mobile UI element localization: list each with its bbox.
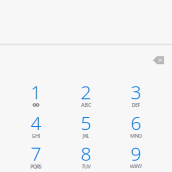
staticText: PQRS (30, 163, 42, 170)
staticText: ABC (81, 101, 91, 109)
button[interactable]: 7 (11, 141, 61, 172)
staticText: JKL (82, 132, 89, 139)
staticText: TUV (81, 163, 90, 170)
button[interactable]: Delete (145, 50, 171, 70)
staticText: 1 (30, 80, 41, 104)
button[interactable]: 5 (61, 111, 111, 143)
button[interactable]: 3 (111, 80, 161, 112)
staticText: WXYZ (130, 163, 142, 170)
staticText: 9 (130, 141, 141, 166)
staticText: GHI (31, 132, 40, 139)
button[interactable]: 9 (111, 141, 161, 172)
staticText: 7 (30, 141, 41, 166)
button[interactable]: 2 (61, 80, 111, 112)
button[interactable]: 8 (61, 141, 111, 172)
button[interactable]: 4 (11, 111, 61, 143)
staticText: 3 (130, 80, 141, 104)
staticText: 5 (80, 110, 91, 135)
staticText: 2 (80, 80, 91, 104)
staticText: 4 (30, 110, 41, 135)
staticText: 8 (80, 141, 91, 166)
staticText: DEF (131, 101, 140, 109)
button[interactable]: 1 (11, 80, 61, 112)
staticText: MNO (130, 132, 142, 139)
button[interactable]: 6 (111, 111, 161, 143)
staticText: 6 (130, 110, 141, 135)
